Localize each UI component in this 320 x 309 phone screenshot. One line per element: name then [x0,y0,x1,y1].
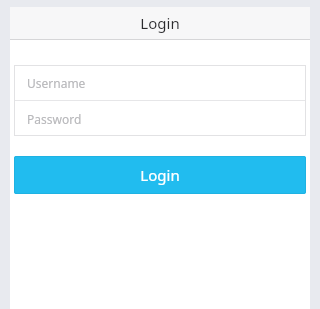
staticText: Login [140,13,180,33]
button[interactable]: Login [14,156,306,194]
staticText: Login [140,165,180,185]
staticText: Password [27,111,82,127]
button[interactable]: Password [14,101,306,136]
button[interactable]: Username [14,65,306,100]
staticText: Username [27,75,86,91]
